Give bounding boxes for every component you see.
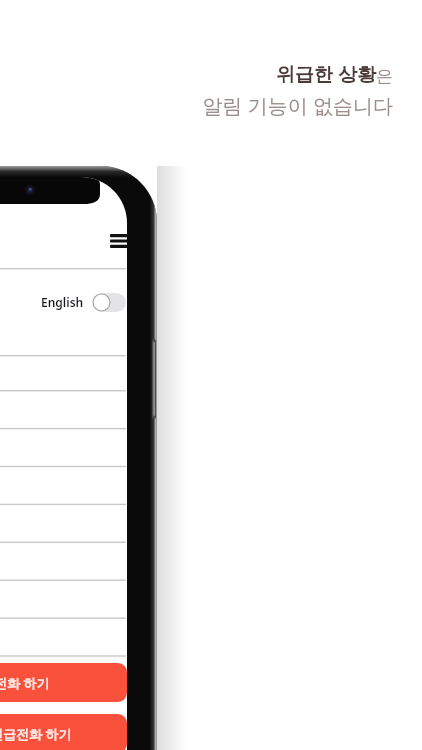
staticText: 긴급전화 하기: [0, 725, 72, 743]
button[interactable]: 전화 하기: [0, 663, 127, 702]
staticText: English: [41, 294, 84, 310]
button[interactable]: English: [20, 288, 126, 316]
button[interactable]: 긴급전화 하기: [0, 714, 127, 750]
staticText: 은: [376, 66, 393, 87]
button[interactable]: Open menu: [104, 228, 134, 254]
staticText: 알림 기능이 없습니다: [202, 92, 393, 119]
staticText: 위급한 상황: [276, 61, 376, 87]
button[interactable]: 위급한 상황: [202, 61, 393, 119]
staticText: 전화 하기: [0, 674, 50, 692]
